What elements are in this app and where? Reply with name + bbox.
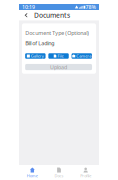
staticText: Docs bbox=[54, 173, 63, 178]
staticText: Camera bbox=[76, 53, 91, 59]
button[interactable]: Profile bbox=[72, 165, 99, 180]
button[interactable]: File bbox=[48, 53, 69, 59]
button[interactable]: Upload bbox=[25, 64, 92, 70]
staticText: Gallery bbox=[31, 53, 44, 59]
staticText: Bill of Lading bbox=[25, 40, 54, 47]
button[interactable]: Gallery bbox=[25, 53, 46, 59]
staticText: File bbox=[57, 53, 63, 59]
staticText: Document Type (Optional) bbox=[25, 29, 89, 36]
staticText: 10:19 bbox=[22, 3, 35, 11]
staticText: Upload bbox=[50, 63, 67, 71]
staticText: 78% bbox=[85, 3, 96, 11]
button[interactable]: Docs bbox=[46, 165, 72, 180]
staticText: Profile bbox=[80, 173, 91, 178]
button[interactable]: Back bbox=[22, 11, 30, 20]
staticText: Documents bbox=[34, 11, 70, 20]
button[interactable]: Home bbox=[19, 165, 46, 180]
staticText: Home bbox=[27, 173, 38, 178]
button[interactable]: Camera bbox=[71, 53, 92, 59]
